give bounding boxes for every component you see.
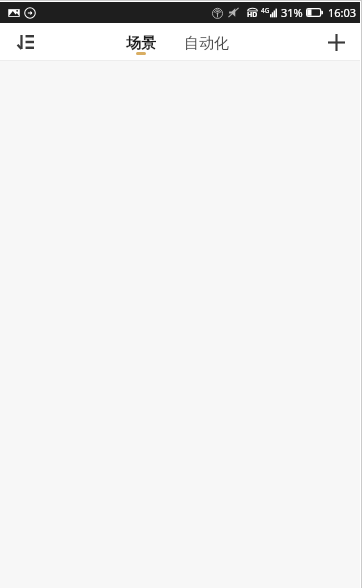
staticText: 16:03 — [328, 5, 357, 20]
button[interactable]: Sort — [0, 23, 50, 61]
button[interactable]: 自动化 — [182, 23, 231, 61]
staticText: HD — [247, 10, 258, 20]
button[interactable]: Add — [310, 23, 360, 61]
button[interactable]: 场景 — [124, 23, 158, 61]
staticText: 自动化 — [184, 34, 229, 53]
staticText: 场景 — [126, 34, 156, 53]
staticText: 4G — [261, 6, 270, 15]
staticText: 31% — [281, 5, 303, 20]
